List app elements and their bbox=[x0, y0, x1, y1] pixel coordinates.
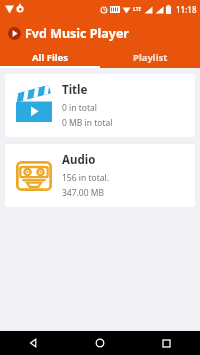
staticText: 156 in total. bbox=[62, 172, 109, 184]
button[interactable]: Video files bbox=[5, 74, 195, 137]
staticText: 347.00 MB bbox=[62, 187, 105, 199]
staticText: Playlist bbox=[133, 51, 168, 64]
button[interactable]: Home bbox=[66, 331, 133, 355]
other: Audio files bbox=[16, 161, 52, 191]
staticText: LTE bbox=[133, 6, 142, 13]
button[interactable]: Recent apps bbox=[133, 331, 200, 355]
button[interactable]: Playlist bbox=[100, 48, 200, 66]
button[interactable]: Back bbox=[0, 331, 66, 355]
staticText: Audio bbox=[62, 152, 96, 168]
button[interactable]: Audio files bbox=[5, 144, 195, 207]
staticText: Fvd Music Player bbox=[25, 25, 129, 42]
staticText: 0 in total bbox=[62, 102, 97, 114]
staticText: 0 MB in total bbox=[62, 117, 113, 129]
staticText: All Files bbox=[32, 51, 69, 64]
other: Video files bbox=[16, 89, 52, 122]
staticText: Title bbox=[62, 82, 88, 98]
staticText: 11:18 bbox=[176, 4, 197, 15]
button[interactable]: All Files bbox=[0, 48, 100, 66]
